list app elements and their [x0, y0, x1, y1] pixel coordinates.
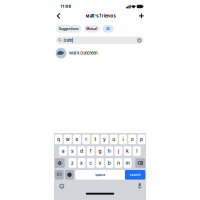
staticText: c: [89, 160, 92, 166]
staticText: k: [126, 148, 129, 154]
staticText: Matt's friends: [85, 13, 115, 18]
staticText: t: [94, 136, 96, 142]
staticText: q: [57, 136, 60, 142]
staticText: All: [106, 27, 110, 31]
button[interactable]: h: [105, 146, 113, 156]
button[interactable]: All: [102, 25, 113, 33]
staticText: g: [98, 148, 101, 154]
button[interactable]: Suggestions: [56, 25, 81, 33]
staticText: x: [80, 160, 83, 166]
staticText: Dunc: [64, 38, 73, 43]
staticText: v: [98, 160, 101, 166]
staticText: m: [126, 160, 130, 166]
staticText: e: [75, 136, 78, 142]
staticText: w: [66, 136, 70, 142]
staticText: z: [71, 160, 74, 166]
button[interactable]: m: [124, 158, 131, 168]
staticText: d: [80, 148, 83, 154]
button[interactable]: v: [96, 158, 104, 168]
staticText: o: [131, 136, 134, 142]
button[interactable]: Delete: [135, 158, 145, 168]
button[interactable]: o: [128, 134, 136, 144]
staticText: s: [71, 148, 74, 154]
staticText: space: [95, 173, 105, 177]
button[interactable]: l: [133, 146, 141, 156]
button[interactable]: b: [105, 158, 113, 168]
staticText: r: [85, 136, 87, 142]
staticText: j: [118, 148, 119, 154]
button[interactable]: k: [124, 146, 131, 156]
staticText: b: [108, 160, 111, 166]
staticText: 123: [57, 173, 62, 176]
staticText: y: [103, 136, 106, 142]
button[interactable]: Emoji: [65, 170, 74, 180]
staticText: i: [122, 136, 123, 142]
button[interactable]: w: [64, 134, 72, 144]
button[interactable]: search: [125, 170, 145, 180]
button[interactable]: Dictation: [137, 183, 142, 189]
button[interactable]: t: [91, 134, 99, 144]
button[interactable]: Back: [56, 12, 61, 19]
button[interactable]: i: [119, 134, 127, 144]
button[interactable]: a: [59, 146, 67, 156]
button[interactable]: d: [78, 146, 85, 156]
button[interactable]: n: [114, 158, 122, 168]
button[interactable]: Clear text: [137, 38, 142, 43]
staticText: n: [117, 160, 120, 166]
button[interactable]: p: [137, 134, 145, 144]
staticText: h: [108, 148, 111, 154]
button[interactable]: Emoji keyboard: [59, 184, 64, 189]
button[interactable]: q: [55, 134, 62, 144]
button[interactable]: f: [87, 146, 95, 156]
button[interactable]: x: [78, 158, 85, 168]
staticText: 11:08: [60, 4, 71, 9]
button[interactable]: Shift: [55, 158, 65, 168]
button[interactable]: j: [114, 146, 122, 156]
button[interactable]: y: [101, 134, 108, 144]
button[interactable]: z: [68, 158, 76, 168]
staticText: Mark Duncheon: [69, 51, 97, 55]
button[interactable]: s: [68, 146, 76, 156]
button[interactable]: g: [96, 146, 104, 156]
button[interactable]: Mutual: [84, 25, 99, 33]
staticText: Mutual: [86, 27, 97, 31]
staticText: f: [90, 148, 92, 154]
button[interactable]: Mark Duncheon: [54, 47, 146, 59]
staticText: a: [62, 148, 65, 154]
button[interactable]: e: [73, 134, 81, 144]
button[interactable]: space: [75, 170, 125, 180]
button[interactable]: u: [110, 134, 118, 144]
staticText: p: [140, 136, 143, 142]
staticText: search: [130, 173, 141, 177]
button[interactable]: 123: [55, 170, 64, 180]
button[interactable]: c: [87, 158, 95, 168]
button[interactable]: r: [82, 134, 90, 144]
staticText: Suggestions: [59, 27, 79, 31]
staticText: u: [112, 136, 115, 142]
staticText: l: [136, 148, 137, 154]
button[interactable]: Add friend: [139, 13, 144, 19]
